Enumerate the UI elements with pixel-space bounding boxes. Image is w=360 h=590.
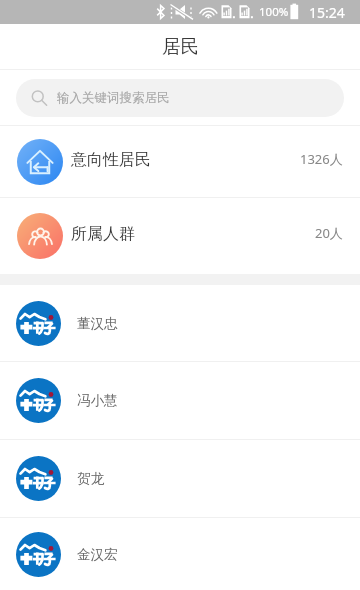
staticText: 贺龙 bbox=[77, 470, 104, 487]
staticText: 15:24 bbox=[309, 3, 345, 22]
staticText: 20人 bbox=[315, 224, 343, 242]
staticText: 100% bbox=[259, 4, 289, 20]
button[interactable]: 贺龙 bbox=[0, 440, 360, 517]
button[interactable]: 冯小慧 bbox=[0, 362, 360, 439]
staticText: 居民 bbox=[162, 35, 199, 58]
staticText: 所属人群 bbox=[71, 224, 135, 244]
button[interactable]: 所属人群 bbox=[0, 198, 360, 274]
button[interactable]: 金汉宏 bbox=[0, 518, 360, 590]
button[interactable]: 意向性居民 bbox=[0, 126, 360, 197]
button[interactable]: 董汉忠 bbox=[0, 285, 360, 361]
staticText: 冯小慧 bbox=[77, 392, 118, 409]
button[interactable]: 输入关键词搜索居民 bbox=[16, 79, 344, 117]
staticText: 董汉忠 bbox=[77, 315, 118, 332]
staticText: 意向性居民 bbox=[71, 150, 151, 170]
staticText: 金汉宏 bbox=[77, 546, 118, 563]
staticText: 输入关键词搜索居民 bbox=[57, 90, 170, 106]
staticText: 1326人 bbox=[300, 150, 343, 168]
